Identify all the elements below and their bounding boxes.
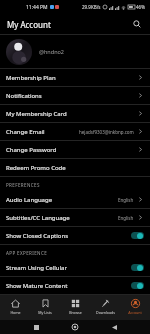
staticText: English	[118, 215, 134, 221]
button[interactable]: Change Email	[0, 123, 150, 140]
staticText: 29.9KB/s	[82, 4, 101, 10]
button[interactable]: @hndno2	[0, 35, 150, 68]
button[interactable]: My Lists	[30, 295, 60, 320]
staticText: My Membership Card	[6, 110, 137, 118]
button[interactable]: Downloads	[90, 295, 120, 320]
staticText: hejadsf9303@inkbnp.com	[79, 129, 134, 135]
staticText: My Account	[7, 19, 131, 30]
staticText: My Lists	[38, 310, 52, 315]
button[interactable]	[131, 264, 144, 271]
staticText: Account	[128, 310, 142, 315]
staticText: Stream Using Cellular	[6, 264, 131, 272]
button[interactable]: Home	[0, 295, 30, 320]
staticText: Change Email	[6, 128, 79, 136]
button[interactable]: Search	[131, 18, 143, 30]
button[interactable]: Stream Using Cellular	[0, 259, 150, 276]
staticText: Membership Plan	[6, 74, 137, 82]
staticText: Show Mature Content	[6, 282, 131, 290]
staticText: Subtitles/CC Language	[6, 214, 118, 222]
button[interactable]: Audio Language	[0, 191, 150, 208]
staticText: Home	[10, 310, 21, 315]
button[interactable]: Change Password	[0, 141, 150, 158]
button[interactable]: Account	[120, 295, 150, 320]
staticText: APP EXPERIENCE	[6, 250, 48, 256]
staticText: English	[118, 197, 134, 203]
button[interactable]	[131, 232, 144, 239]
button[interactable]: Show Mature Content	[0, 277, 150, 294]
staticText: 11:44 PM	[26, 4, 48, 11]
staticText: PREFERENCES	[6, 182, 40, 188]
staticText: Browse	[69, 310, 82, 315]
button[interactable]: Redeem Promo Code	[0, 159, 150, 176]
staticText: Downloads	[96, 310, 115, 315]
button[interactable]: Membership Plan	[0, 69, 150, 86]
staticText: @hndno2	[39, 48, 64, 55]
staticText: Redeem Promo Code	[6, 164, 144, 172]
staticText: Change Password	[6, 146, 137, 154]
staticText: 46%	[136, 4, 145, 10]
button[interactable]: Show Closed Captions	[0, 227, 150, 244]
button[interactable]: Subtitles/CC Language	[0, 209, 150, 226]
button[interactable]: Browse	[60, 295, 90, 320]
staticText: Notifications	[6, 92, 137, 100]
button[interactable]: Notifications	[0, 87, 150, 104]
button[interactable]	[131, 282, 144, 289]
button[interactable]: My Membership Card	[0, 105, 150, 122]
staticText: Show Closed Captions	[6, 232, 131, 240]
staticText: Audio Language	[6, 196, 118, 204]
